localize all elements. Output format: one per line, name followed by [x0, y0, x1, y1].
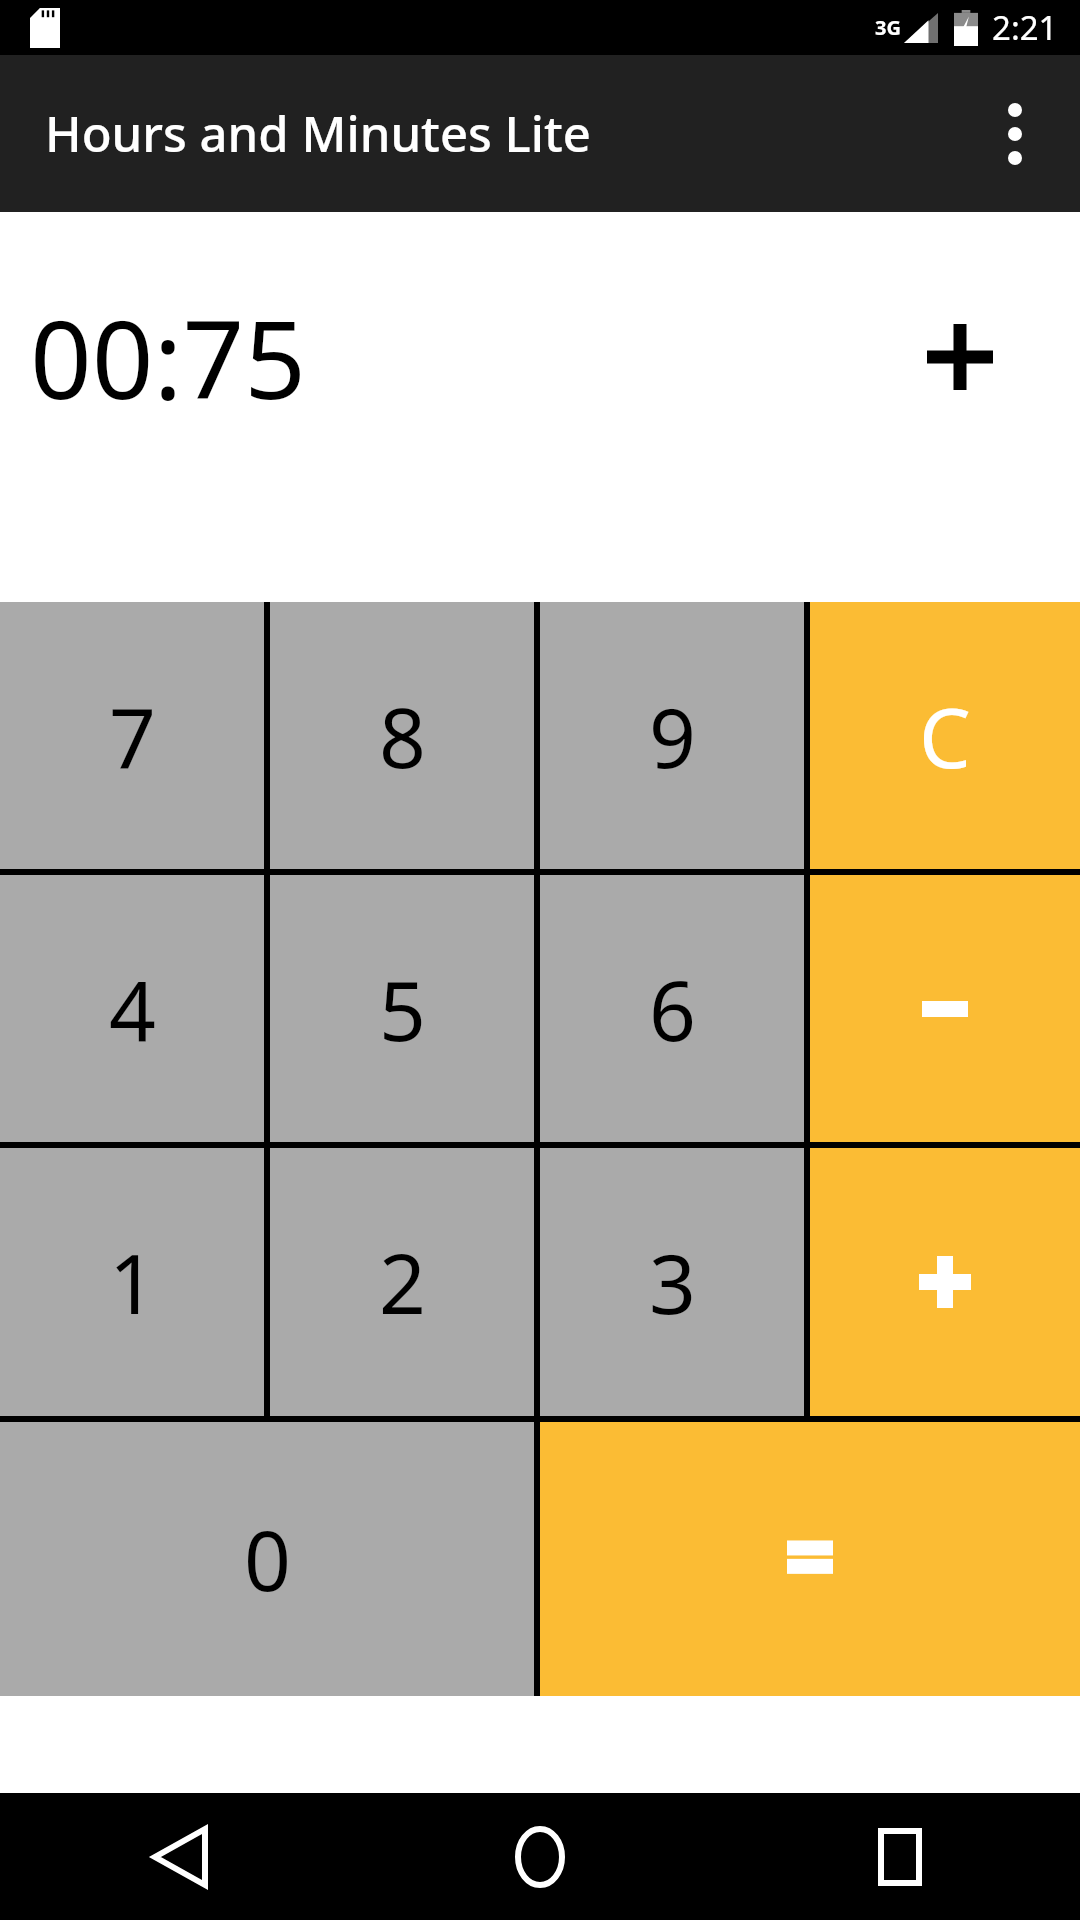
staticText: 0: [244, 1503, 291, 1615]
button[interactable]: 0: [0, 1422, 534, 1696]
staticText: 00:75: [30, 284, 307, 431]
button[interactable]: Subtract: [810, 875, 1080, 1142]
button[interactable]: Back: [115, 1793, 245, 1920]
button[interactable]: 7: [0, 602, 264, 869]
button[interactable]: 1: [0, 1148, 264, 1416]
button[interactable]: More options: [960, 79, 1070, 189]
staticText: 3G: [875, 14, 901, 41]
staticText: 2:21: [992, 5, 1058, 50]
staticText: 2: [379, 1226, 426, 1338]
button[interactable]: Add: [810, 1148, 1080, 1416]
staticText: Hours and Minutes Lite: [45, 100, 591, 167]
button[interactable]: 5: [270, 875, 534, 1142]
staticText: 8: [379, 680, 426, 792]
staticText: 9: [649, 680, 696, 792]
button[interactable]: Clear: [810, 602, 1080, 869]
button[interactable]: 2: [270, 1148, 534, 1416]
staticText: 7: [109, 680, 156, 792]
staticText: C: [919, 680, 971, 792]
button[interactable]: Add entry: [900, 297, 1020, 417]
button[interactable]: 8: [270, 602, 534, 869]
staticText: 1: [109, 1226, 156, 1338]
button[interactable]: Home: [475, 1793, 605, 1920]
staticText: 3: [649, 1226, 696, 1338]
button[interactable]: 9: [540, 602, 804, 869]
staticText: 4: [109, 953, 156, 1065]
button[interactable]: 3: [540, 1148, 804, 1416]
button[interactable]: 4: [0, 875, 264, 1142]
staticText: 5: [379, 953, 426, 1065]
button[interactable]: Equals: [540, 1422, 1080, 1696]
button[interactable]: Recent apps: [835, 1793, 965, 1920]
staticText: 6: [649, 953, 696, 1065]
button[interactable]: 6: [540, 875, 804, 1142]
